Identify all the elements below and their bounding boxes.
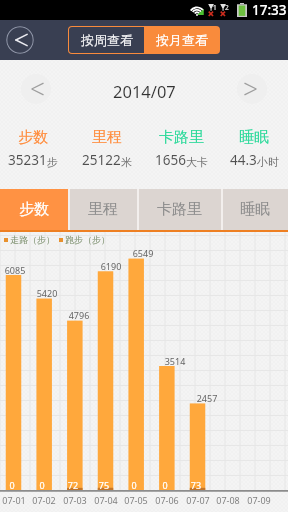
staticText: 卡路里 (159, 128, 204, 147)
staticText: 里程 (92, 128, 122, 147)
staticText: 5420 (35, 287, 59, 299)
staticText: 走路（步） (10, 234, 55, 245)
button[interactable]: 卡路里 (137, 189, 221, 230)
staticText: 73 (189, 479, 203, 491)
staticText: 72 (66, 479, 80, 491)
staticText: 米 (121, 155, 132, 169)
staticText: 按月查看 (156, 32, 208, 48)
staticText: 25122 (82, 151, 121, 169)
staticText: 0 (35, 479, 49, 491)
staticText: 07-02 (30, 494, 58, 506)
staticText: 07-08 (214, 494, 242, 506)
staticText: 2457 (195, 392, 219, 404)
staticText: 步 (47, 155, 58, 169)
staticText: 大卡 (186, 155, 208, 169)
button[interactable]: 按周查看 (69, 27, 144, 53)
staticText: 里程 (88, 200, 118, 219)
staticText: 07-04 (92, 494, 120, 506)
button[interactable]: 按月查看 (144, 27, 219, 53)
button[interactable]: 睡眠 (218, 118, 288, 189)
staticText: 3514 (163, 355, 187, 367)
staticText: 75 (97, 479, 111, 491)
staticText: 6190 (99, 260, 123, 272)
button[interactable]: 步数 (0, 189, 68, 230)
staticText: 07-05 (122, 494, 150, 506)
button[interactable]: 里程 (71, 118, 143, 189)
staticText: 0 (158, 479, 172, 491)
staticText: 07-06 (153, 494, 181, 506)
staticText: 小时 (257, 155, 279, 169)
staticText: 2014/07 (113, 80, 176, 102)
button[interactable]: Previous month (21, 74, 51, 104)
button[interactable]: 里程 (68, 189, 137, 230)
staticText: 6549 (131, 247, 155, 259)
staticText: 07-03 (61, 494, 89, 506)
staticText: 步数 (18, 128, 48, 147)
staticText: 睡眠 (239, 128, 269, 147)
staticText: 07-07 (184, 494, 212, 506)
staticText: 卡路里 (157, 200, 202, 219)
staticText: 44.3 (230, 151, 257, 169)
staticText: 步数 (19, 200, 49, 219)
staticText: 4796 (67, 309, 91, 321)
staticText: 07-01 (0, 494, 28, 506)
button[interactable]: 步数 (0, 118, 69, 189)
staticText: 6085 (3, 264, 27, 276)
staticText: 按周查看 (81, 32, 133, 48)
staticText: 07-09 (245, 494, 273, 506)
staticText: 2 (225, 3, 229, 12)
staticText: 17:33 (252, 1, 287, 19)
button[interactable]: 睡眠 (221, 189, 288, 230)
staticText: 睡眠 (240, 200, 270, 219)
staticText: 0 (127, 479, 141, 491)
staticText: 0 (5, 479, 19, 491)
staticText: 跑步（步） (65, 234, 110, 245)
button[interactable]: Next month (237, 74, 267, 104)
staticText: 1 (213, 3, 217, 12)
button[interactable]: Back (6, 26, 34, 54)
staticText: 1656 (155, 151, 186, 169)
staticText: 35231 (8, 151, 47, 169)
button[interactable]: 卡路里 (145, 118, 217, 189)
